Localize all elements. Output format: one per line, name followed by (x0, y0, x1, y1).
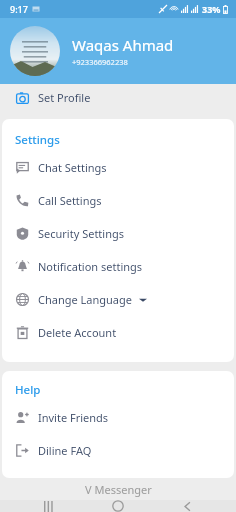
button[interactable]: Home (98, 500, 138, 512)
staticText: Help (15, 382, 41, 398)
staticText: Security Settings (38, 226, 124, 241)
button[interactable]: Diline FAQ (2, 434, 234, 467)
staticText: Change Language (38, 292, 132, 307)
staticText: Set Profile (38, 90, 91, 105)
staticText: Call Settings (38, 193, 102, 208)
button[interactable]: Recent apps (29, 500, 69, 512)
button[interactable]: Back (167, 500, 207, 512)
staticText: Notification settings (38, 259, 143, 274)
button[interactable]: Notification settings (2, 250, 234, 283)
staticText: Delete Account (38, 325, 117, 340)
button[interactable]: Set Profile (0, 84, 236, 110)
button[interactable]: Invite Friends (2, 401, 234, 434)
staticText: 9:17 (10, 3, 28, 15)
staticText: V Messenger (85, 482, 152, 497)
button[interactable]: Delete Account (2, 316, 234, 349)
staticText: Waqas Ahmad (72, 35, 174, 55)
button[interactable]: Security Settings (2, 217, 234, 250)
button[interactable]: Chat Settings (2, 151, 234, 184)
button[interactable]: Waqas Ahmad (0, 18, 236, 84)
button[interactable]: Change Language (2, 283, 234, 316)
staticText: Diline FAQ (38, 443, 92, 458)
staticText: 33% (202, 3, 221, 15)
staticText: Chat Settings (38, 160, 107, 175)
staticText: Settings (15, 132, 60, 148)
staticText: +923366962238 (72, 57, 128, 67)
staticText: Invite Friends (38, 410, 109, 425)
button[interactable]: Call Settings (2, 184, 234, 217)
